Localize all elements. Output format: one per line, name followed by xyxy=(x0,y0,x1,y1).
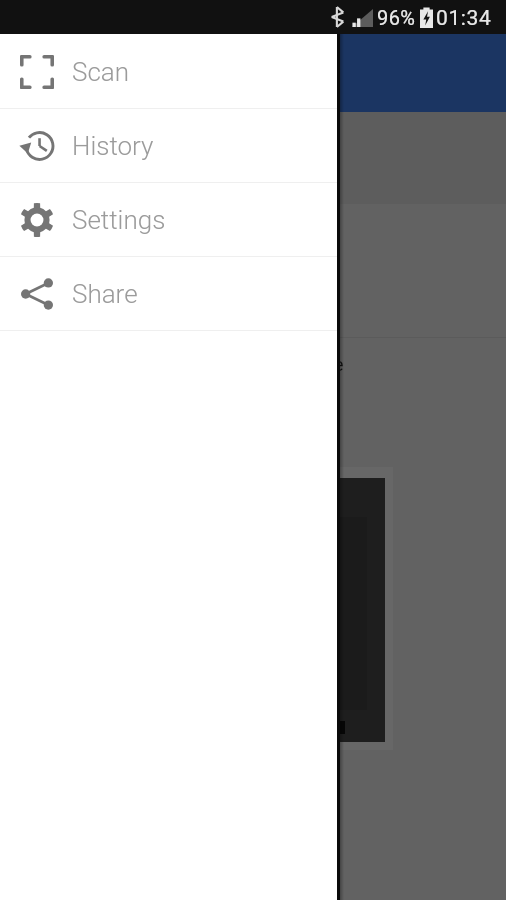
button[interactable]: Share xyxy=(0,257,337,330)
staticText: Share xyxy=(72,279,138,309)
staticText: 01:34 xyxy=(436,6,492,31)
button[interactable]: Settings xyxy=(0,183,337,256)
staticText: Scan xyxy=(72,57,130,87)
staticText: Scanned code text he xyxy=(162,353,344,375)
button[interactable]: History xyxy=(0,109,337,182)
button[interactable]: Close navigation drawer xyxy=(340,0,506,900)
staticText: 96% xyxy=(377,6,416,29)
staticText: Settings xyxy=(72,205,166,235)
staticText: History xyxy=(72,131,154,161)
button[interactable]: Scan xyxy=(0,35,337,108)
